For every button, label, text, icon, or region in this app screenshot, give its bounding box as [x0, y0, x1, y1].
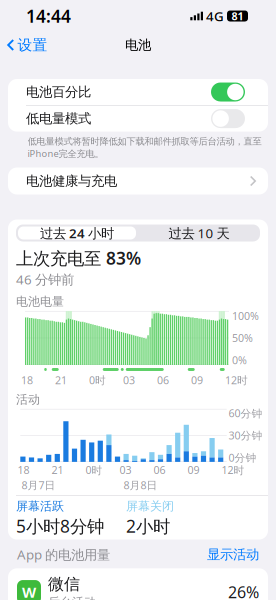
staticText: 8月8日 — [123, 478, 157, 492]
button[interactable]: 低电量模式 — [8, 106, 268, 132]
staticText: 26% — [228, 581, 259, 600]
staticText: 30分钟 — [228, 428, 262, 442]
staticText: 屏幕活跃 — [16, 499, 64, 513]
button[interactable]: 过去 24 小时 — [16, 224, 138, 241]
staticText: 电池健康与充电 — [26, 173, 117, 189]
staticText: 电池电量 — [16, 294, 64, 309]
staticText: 21 — [51, 463, 63, 477]
staticText: 显示活动 — [207, 546, 259, 563]
staticText: 过去 10 天 — [168, 224, 229, 242]
staticText: 2小时 — [126, 514, 170, 537]
button[interactable]: 显示活动 — [207, 546, 259, 563]
staticText: 18 — [17, 463, 29, 477]
staticText: 06 — [157, 373, 169, 387]
staticText: 09 — [191, 373, 203, 387]
staticText: 电池百分比 — [26, 84, 91, 100]
staticText: 屏幕关闭 — [126, 499, 174, 513]
staticText: 活动 — [16, 392, 40, 407]
staticText: W — [22, 582, 36, 600]
staticText: 4G — [206, 7, 224, 25]
button[interactable]: 过去 10 天 — [138, 224, 260, 241]
staticText: 03 — [119, 463, 131, 477]
staticText: 0时 — [85, 463, 102, 477]
button[interactable]: 电池健康与充电 — [8, 167, 268, 194]
staticText: App 的电池用量 — [17, 546, 110, 563]
staticText: 50% — [232, 331, 253, 345]
staticText: 14:44 — [26, 4, 71, 27]
staticText: 上次充电至 83% — [16, 246, 141, 269]
button[interactable]: 设置 — [1, 33, 53, 57]
staticText: 21 — [55, 373, 67, 387]
button[interactable]: 电池百分比 — [8, 79, 268, 105]
staticText: 03 — [123, 373, 135, 387]
staticText: 设置 — [17, 36, 47, 54]
staticText: 5小时8分钟 — [16, 514, 104, 537]
staticText: 100% — [232, 309, 259, 323]
staticText: 低电量模式将暂时降低如下载和邮件抓取等后台活动，直至 iPhone完全充电。 — [27, 136, 261, 159]
staticText: 12时 — [221, 463, 244, 477]
staticText: 过去 24 小时 — [40, 224, 114, 242]
staticText: 81 — [231, 9, 243, 23]
staticText: 8月7日 — [21, 478, 55, 492]
staticText: 06 — [153, 463, 165, 477]
button[interactable]: W — [8, 568, 268, 600]
staticText: 09 — [187, 463, 199, 477]
staticText: 低电量模式 — [26, 110, 91, 127]
staticText: 0时 — [89, 373, 106, 387]
staticText: 0% — [232, 353, 247, 367]
staticText: 0分钟 — [228, 450, 256, 465]
staticText: 46 分钟前 — [16, 270, 74, 288]
staticText: 12时 — [225, 373, 248, 387]
staticText: 电池 — [125, 37, 151, 53]
staticText: 后台活动 — [48, 595, 96, 600]
staticText: 微信 — [48, 574, 80, 594]
staticText: 18 — [21, 373, 33, 387]
staticText: 60分钟 — [228, 406, 262, 420]
